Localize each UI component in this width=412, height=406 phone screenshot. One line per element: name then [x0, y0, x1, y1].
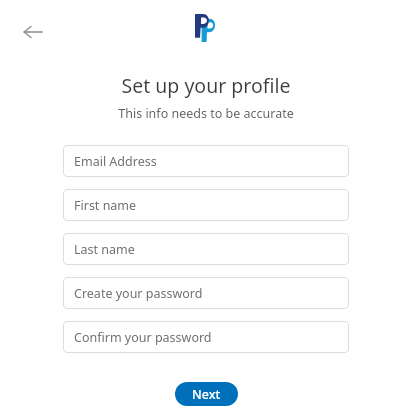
- staticText: First name: [74, 197, 137, 214]
- staticText: Next: [192, 386, 221, 403]
- button[interactable]: Back: [14, 13, 52, 51]
- button[interactable]: Next: [175, 382, 238, 406]
- button[interactable]: Confirm your password: [63, 321, 349, 353]
- staticText: Email Address: [74, 153, 157, 170]
- staticText: Set up your profile: [121, 72, 291, 99]
- staticText: Confirm your password: [74, 329, 212, 346]
- button[interactable]: Email Address: [63, 145, 349, 177]
- button[interactable]: Last name: [63, 233, 349, 265]
- button[interactable]: Create your password: [63, 277, 349, 309]
- staticText: Create your password: [74, 285, 203, 302]
- staticText: Last name: [74, 241, 135, 258]
- button[interactable]: First name: [63, 189, 349, 221]
- staticText: This info needs to be accurate: [118, 105, 294, 122]
